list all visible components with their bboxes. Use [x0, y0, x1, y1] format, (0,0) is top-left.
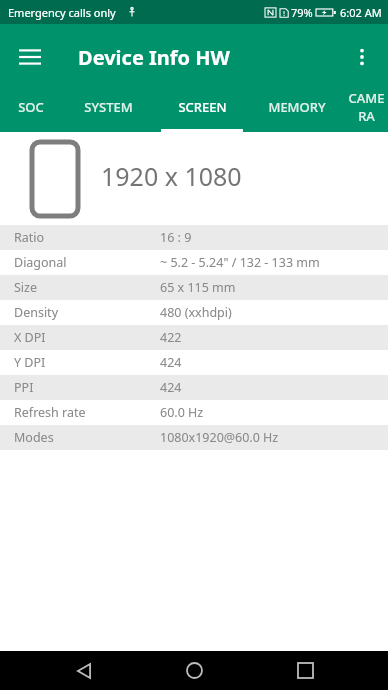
button[interactable]: Density — [0, 300, 388, 325]
button[interactable]: Diagonal — [0, 250, 388, 275]
staticText: Modes — [14, 429, 54, 446]
staticText: 422 — [160, 329, 182, 346]
staticText: SYSTEM — [84, 98, 133, 116]
button[interactable]: Ratio — [0, 225, 388, 250]
button[interactable]: X DPI — [0, 325, 388, 350]
staticText: Diagonal — [14, 254, 67, 271]
button[interactable]: PPI — [0, 375, 388, 400]
staticText: 424 — [160, 354, 182, 371]
staticText: Device Info HW — [78, 44, 230, 71]
staticText: 79% — [291, 5, 313, 20]
button[interactable]: SYSTEM — [61, 90, 155, 132]
button[interactable]: SOC — [0, 90, 61, 132]
staticText: 480 (xxhdpi) — [160, 304, 232, 321]
staticText: Emergency calls only — [8, 5, 116, 20]
button[interactable]: Recent apps — [278, 651, 332, 690]
staticText: Size — [14, 279, 38, 296]
staticText: 65 x 115 mm — [160, 279, 236, 296]
button[interactable]: Size — [0, 275, 388, 300]
staticText: 6:02 AM — [340, 5, 382, 20]
button[interactable]: Home — [167, 651, 221, 690]
staticText: CAMERA — [345, 89, 388, 125]
button[interactable]: Back — [57, 651, 111, 690]
button[interactable]: Modes — [0, 425, 388, 450]
staticText: 16 : 9 — [160, 229, 192, 246]
button[interactable]: More options — [340, 35, 384, 79]
staticText: 1920 x 1080 — [101, 159, 242, 193]
staticText: SCREEN — [178, 98, 227, 116]
staticText: PPI — [14, 379, 34, 396]
staticText: Density — [14, 304, 59, 321]
staticText: MEMORY — [268, 98, 326, 116]
staticText: Y DPI — [14, 354, 46, 371]
button[interactable]: CAMERA — [345, 90, 388, 132]
staticText: X DPI — [14, 329, 46, 346]
button[interactable]: Refresh rate — [0, 400, 388, 425]
button[interactable]: SCREEN — [155, 90, 249, 132]
button[interactable]: Y DPI — [0, 350, 388, 375]
staticText: Refresh rate — [14, 404, 86, 421]
staticText: Ratio — [14, 229, 45, 246]
staticText: 424 — [160, 379, 182, 396]
staticText: ~ 5.2 - 5.24" / 132 - 133 mm — [160, 254, 320, 271]
button[interactable]: MEMORY — [249, 90, 345, 132]
staticText: 1080x1920@60.0 Hz — [160, 429, 279, 446]
staticText: 60.0 Hz — [160, 404, 204, 421]
button[interactable]: Open navigation drawer — [8, 35, 52, 79]
staticText: SOC — [18, 98, 44, 116]
